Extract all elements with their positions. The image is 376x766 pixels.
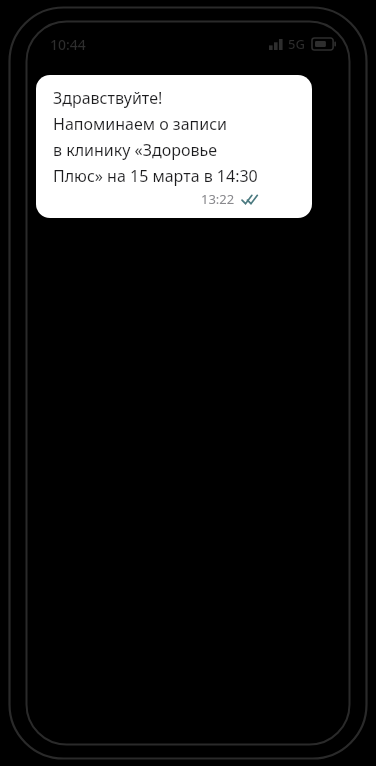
staticText: 10:44 [50,35,86,54]
other: Message read [242,194,258,205]
button[interactable]: Здравствуйте! Напоминаем о записи в клин… [36,75,312,218]
staticText: Здравствуйте! Напоминаем о записи в клин… [53,87,258,187]
staticText: 13:22 [201,190,235,208]
staticText: 5G [288,35,305,53]
